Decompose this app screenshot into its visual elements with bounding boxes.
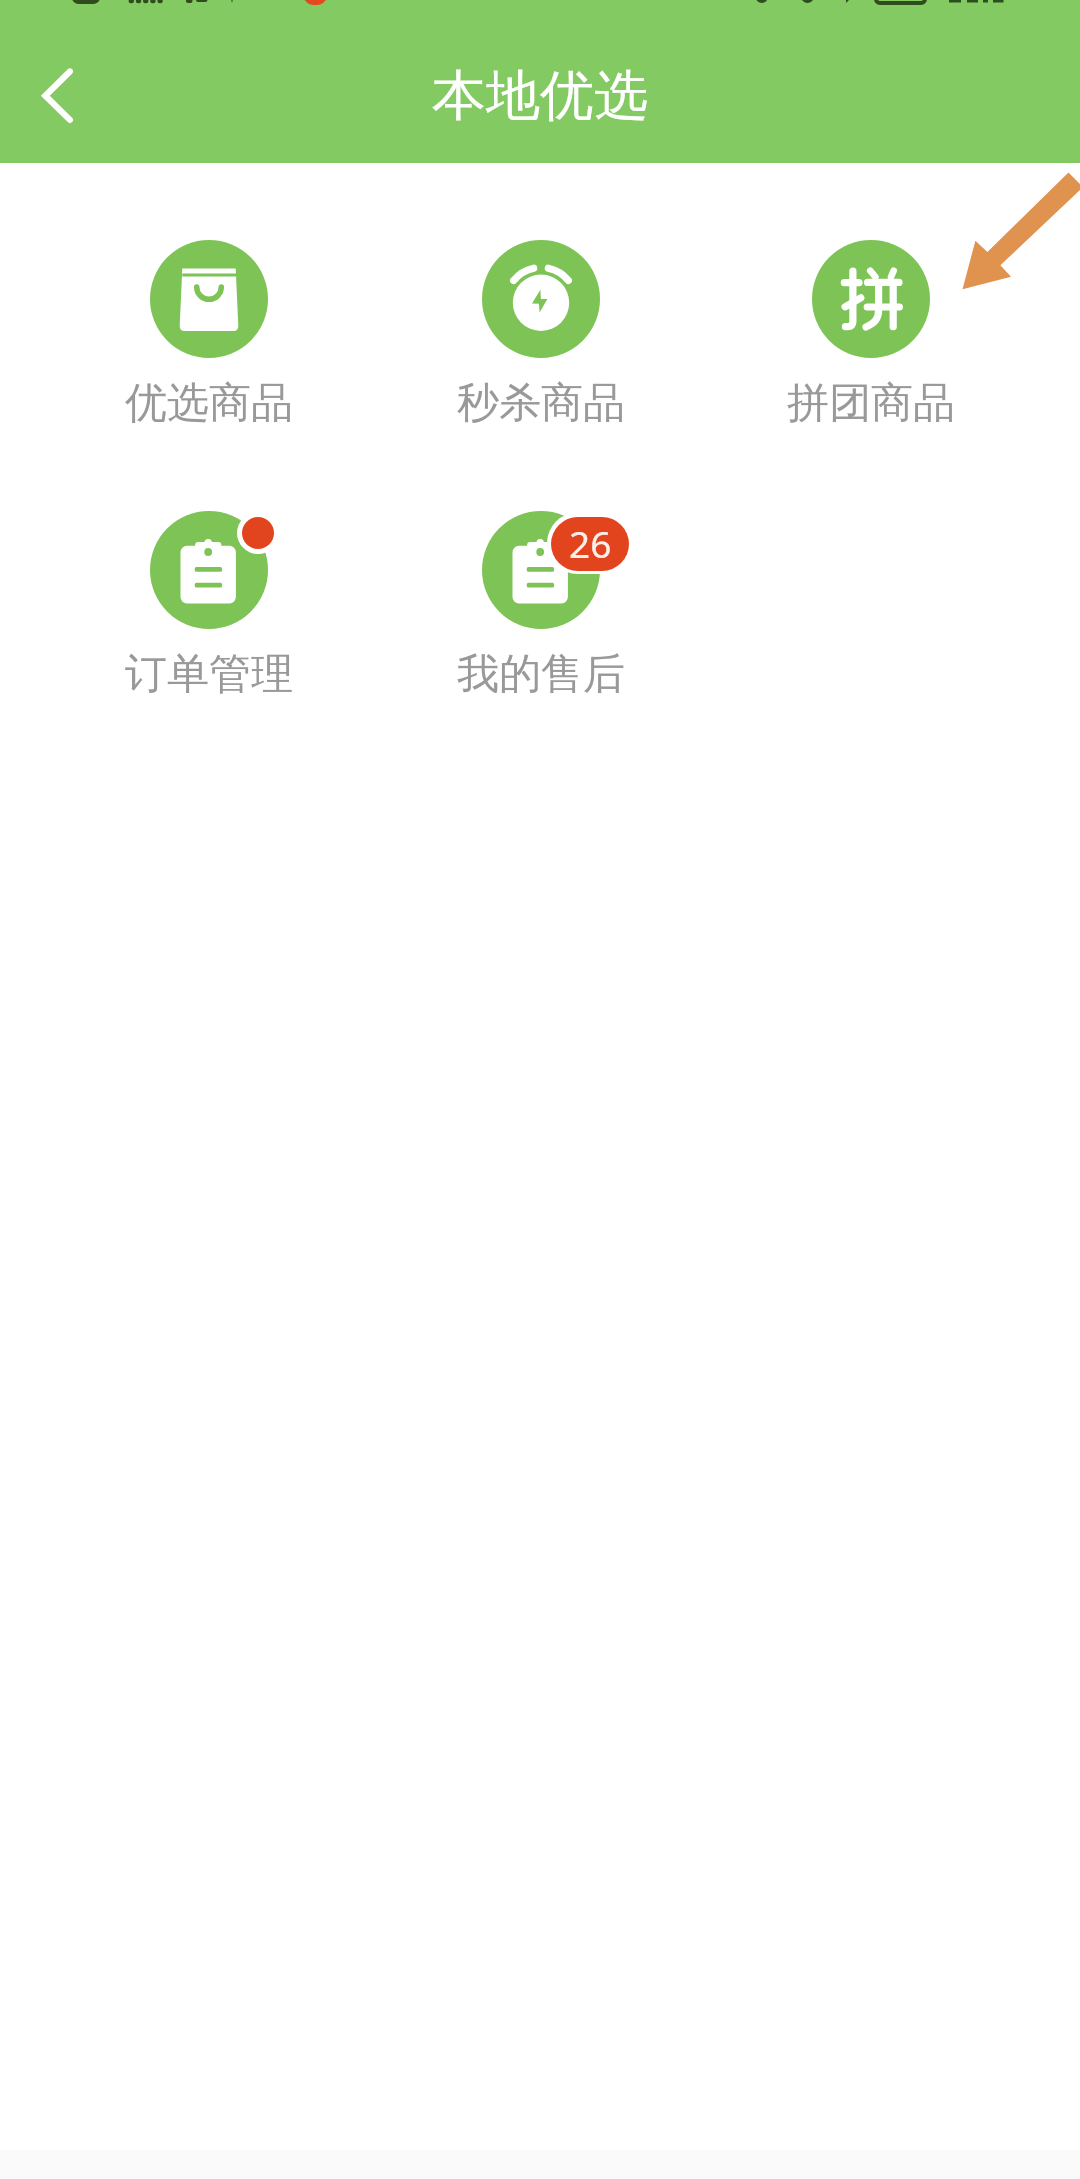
button[interactable]: 26 (411, 490, 671, 701)
staticText: 秒杀商品 (457, 377, 625, 430)
button[interactable]: 秒杀商品 (411, 219, 671, 430)
staticText: 26 (569, 518, 612, 568)
button[interactable]: 拼团商品 (741, 219, 1001, 430)
staticText: 拼团商品 (787, 377, 955, 430)
staticText: 本地优选 (432, 62, 648, 130)
button[interactable]: Back (0, 39, 114, 153)
button[interactable]: 优选商品 (79, 219, 339, 430)
staticText: 订单管理 (125, 648, 293, 701)
staticText: 优选商品 (125, 377, 293, 430)
button[interactable]: 订单管理 (79, 490, 339, 701)
staticText: 我的售后 (457, 648, 625, 701)
